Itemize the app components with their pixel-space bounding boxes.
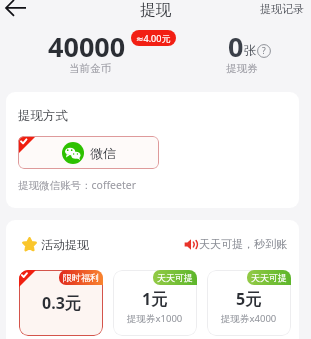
staticText: 5元	[236, 288, 262, 310]
button[interactable]: 微信	[18, 136, 159, 169]
staticText: 0	[228, 28, 244, 65]
staticText: 提现券x4000	[221, 312, 277, 325]
staticText: ≈4.00元	[136, 32, 171, 44]
staticText: ?	[262, 45, 266, 57]
button[interactable]: 1元	[113, 270, 197, 336]
staticText: 提现券	[226, 62, 258, 75]
button[interactable]: Help	[257, 44, 271, 58]
staticText: 天天可提	[157, 272, 193, 283]
button[interactable]: 5元	[207, 270, 291, 336]
staticText: 天天可提，秒到账	[199, 237, 287, 251]
button[interactable]: Back	[4, 0, 28, 24]
staticText: 40000	[48, 28, 126, 65]
button[interactable]: 提现记录	[260, 2, 304, 16]
staticText: 天天可提	[251, 272, 287, 283]
staticText: 0.3元	[42, 292, 81, 314]
staticText: 1元	[142, 288, 168, 310]
staticText: 张	[244, 43, 257, 59]
staticText: 提现券x1000	[127, 312, 183, 325]
staticText: 提现微信账号：coffeeter	[18, 178, 137, 192]
button[interactable]: 0.3元	[19, 270, 103, 336]
staticText: 提现	[140, 0, 171, 20]
staticText: 限时福利	[63, 272, 99, 283]
staticText: 微信	[90, 145, 116, 161]
staticText: 当前金币	[69, 62, 111, 75]
staticText: 活动提现	[41, 237, 89, 252]
staticText: 提现方式	[18, 108, 68, 124]
staticText: 提现记录	[260, 2, 304, 16]
